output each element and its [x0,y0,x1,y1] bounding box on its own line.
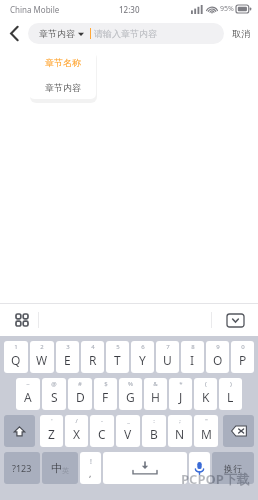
button[interactable]: ( [194,378,217,410]
staticText: 0 [241,343,245,351]
staticText: 5 [116,343,120,351]
button[interactable]: Backspace [223,415,254,447]
button[interactable]: 取消 [224,18,258,48]
staticText: 中 [51,461,62,475]
staticText: ; [179,417,181,425]
button[interactable]: @ [42,378,66,410]
button[interactable]: ?123 [4,452,40,484]
staticText: U [163,352,172,368]
staticText: ?123 [12,462,32,474]
staticText: # [78,380,82,388]
staticText: 2 [40,343,44,351]
button[interactable]: Voice input [189,452,210,484]
staticText: R [89,352,97,368]
button[interactable]: 章节内容 [29,75,96,99]
staticText: ) [230,380,232,388]
button[interactable]: 章节名称 [29,50,96,75]
staticText: 章节名称 [45,57,81,68]
staticText: M [201,426,212,442]
staticText: % [128,380,133,388]
button[interactable]: 换行 [212,452,254,484]
staticText: Z [48,426,55,442]
staticText: 7 [166,343,170,351]
staticText: $ [104,380,108,388]
button[interactable]: 7 [156,341,179,373]
button[interactable]: _ [116,415,140,447]
staticText: D [76,389,85,405]
button[interactable]: ~ [16,378,40,410]
button[interactable]: 8 [181,341,204,373]
staticText: J [179,389,183,405]
staticText: * [179,380,183,388]
button[interactable]: 6 [131,341,154,373]
staticText: / [75,417,78,425]
staticText: P [239,352,247,368]
staticText: 章节内容 [45,82,81,93]
button[interactable]: ' [40,415,63,447]
button[interactable]: ) [219,378,242,410]
staticText: E [64,352,71,368]
button[interactable]: Shift [4,415,35,447]
staticText: 12:30 [119,4,140,15]
button[interactable]: - [90,415,114,447]
button[interactable]: 9 [206,341,229,373]
staticText: 英 [62,466,69,475]
button[interactable]: $ [94,378,117,410]
staticText: Y [139,352,146,368]
staticText: L [227,389,234,405]
button[interactable]: ; [168,415,192,447]
button[interactable]: " [194,415,218,447]
staticText: T [114,352,121,368]
button[interactable]: % [119,378,142,410]
button[interactable]: / [65,415,88,447]
staticText: , [89,467,92,479]
staticText: S [51,389,58,405]
staticText: - [101,417,103,425]
button[interactable]: 章节内容 [28,23,224,44]
staticText: 4 [91,343,95,351]
button[interactable]: 4 [81,341,104,373]
button[interactable]: * [169,378,192,410]
button[interactable]: : [142,415,166,447]
staticText: ! [90,457,92,467]
button[interactable]: Back [0,18,28,48]
staticText: V [124,426,132,442]
staticText: 6 [141,343,145,351]
staticText: & [153,380,158,388]
staticText: W [36,352,48,368]
button[interactable]: Keyboard layouts [11,309,33,331]
button[interactable]: 0 [231,341,254,373]
button[interactable]: Space [103,452,187,484]
button[interactable]: ! [80,452,101,484]
staticText: China Mobile [10,4,60,15]
staticText: _ [127,417,130,425]
staticText: : [153,417,155,425]
staticText: 请输入章节内容 [94,28,157,39]
staticText: 1 [14,343,18,351]
staticText: PCPOP下载 [181,470,250,488]
staticText: B [150,426,158,442]
staticText: @ [51,380,57,388]
staticText: G [126,389,135,405]
staticText: 章节内容 [39,28,75,39]
staticText: " [205,417,208,425]
staticText: I [190,352,195,368]
button[interactable]: 2 [30,341,54,373]
button[interactable]: 中 [42,452,78,484]
button[interactable]: 3 [56,341,79,373]
staticText: 9 [216,343,220,351]
staticText: ~ [26,380,30,388]
button[interactable]: 5 [106,341,129,373]
staticText: 取消 [232,28,250,39]
staticText: ' [51,417,53,425]
button[interactable]: # [68,378,92,410]
button[interactable]: 1 [4,341,28,373]
staticText: 95% [220,4,234,14]
button[interactable]: Hide keyboard [223,310,247,330]
staticText: H [151,389,160,405]
staticText: X [73,426,81,442]
staticText: N [175,426,185,442]
staticText: A [24,389,32,405]
staticText: C [98,426,106,442]
button[interactable]: & [144,378,167,410]
